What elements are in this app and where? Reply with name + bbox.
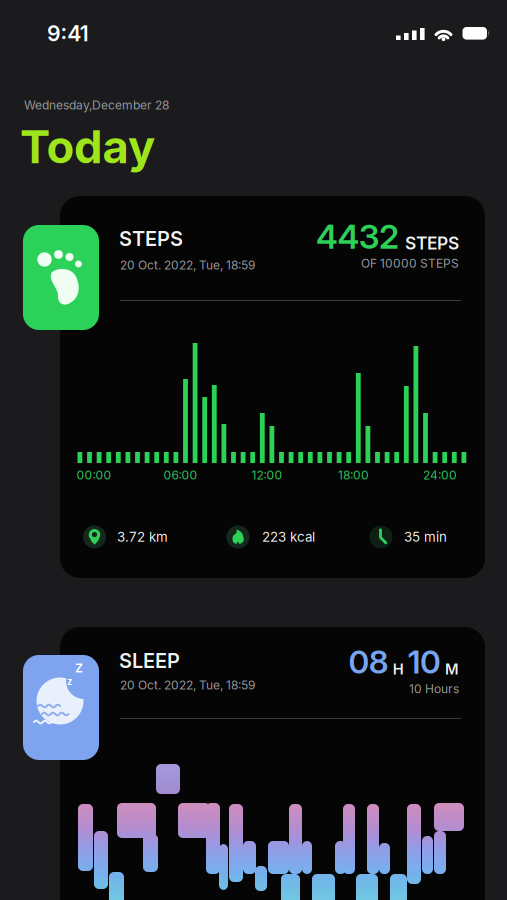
staticText: SLEEP [119, 649, 180, 673]
staticText: 9:41 [47, 21, 89, 46]
staticText: 24:00 [423, 468, 457, 482]
staticText: H [393, 660, 404, 678]
staticText: z [67, 676, 72, 687]
staticText: OF 10000 STEPS [361, 256, 459, 270]
staticText: 06:00 [163, 468, 197, 482]
staticText: 20 Oct. 2022, Tue, 18:59 [120, 678, 255, 692]
staticText: 10 [408, 643, 441, 681]
button[interactable]: STEPS [0, 0, 507, 900]
staticText: 10 Hours [409, 682, 459, 696]
button[interactable]: Z [0, 0, 507, 900]
staticText: Today [20, 120, 155, 173]
staticText: STEPS [119, 227, 183, 251]
staticText: Z [75, 661, 83, 675]
staticText: 3.72 km [117, 529, 168, 545]
staticText: 18:00 [338, 468, 369, 482]
staticText: 35 min [404, 529, 447, 545]
staticText: 08 [348, 643, 389, 681]
staticText: 4432 [316, 217, 399, 256]
staticText: 00:00 [76, 468, 111, 482]
staticText: 223 kcal [262, 529, 315, 545]
staticText: 20 Oct. 2022, Tue, 18:59 [120, 258, 255, 272]
staticText: 12:00 [251, 468, 282, 482]
staticText: M [445, 660, 459, 678]
staticText: STEPS [405, 233, 459, 253]
staticText: Wednesday,December 28 [24, 98, 169, 112]
